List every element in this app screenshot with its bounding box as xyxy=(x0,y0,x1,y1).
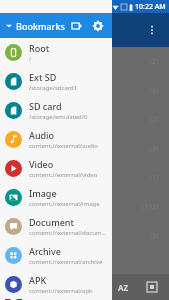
button[interactable]: All Files xyxy=(0,299,112,300)
staticText: content://external/video xyxy=(29,171,98,179)
button[interactable]: Add bookmark xyxy=(69,18,85,34)
staticText: (3) xyxy=(150,144,159,154)
staticText: /storage/emulated/0 xyxy=(29,113,88,121)
button[interactable]: AZ xyxy=(118,282,129,293)
staticText: Ext SD xyxy=(29,71,57,83)
button[interactable]: Audio xyxy=(0,125,112,154)
staticText: (1) xyxy=(150,173,159,183)
button[interactable]: More options xyxy=(141,19,163,41)
staticText: content://external/archive xyxy=(29,258,103,266)
staticText: Archive xyxy=(29,245,61,257)
button[interactable]: Archive xyxy=(0,241,112,270)
staticText: APK xyxy=(29,274,47,286)
staticText: /storage/sdcard1 xyxy=(29,84,78,92)
staticText: content://external/apk xyxy=(29,287,93,295)
button[interactable]: SD card xyxy=(0,96,112,125)
staticText: (2) xyxy=(150,115,159,125)
staticText: content://external/document xyxy=(29,229,108,237)
button[interactable]: APK xyxy=(0,270,112,299)
staticText: (2) xyxy=(150,57,159,67)
staticText: 10:22 AM xyxy=(135,2,166,12)
staticText: (132) xyxy=(142,202,159,212)
button[interactable]: Video xyxy=(0,154,112,183)
staticText: SD card xyxy=(29,100,62,112)
staticText: (8) xyxy=(150,86,159,96)
staticText: Root xyxy=(29,42,50,54)
staticText: (3) xyxy=(150,231,159,241)
staticText: content://external/audio xyxy=(29,142,98,150)
staticText: Image xyxy=(29,187,57,199)
staticText: Video xyxy=(29,158,54,170)
button[interactable]: Root xyxy=(0,38,112,67)
button[interactable]: Settings xyxy=(89,17,107,35)
button[interactable]: Ext SD xyxy=(0,67,112,96)
staticText: content://external/image xyxy=(29,200,100,208)
staticText: / xyxy=(29,55,32,63)
button[interactable]: Bookmarks xyxy=(6,20,65,32)
button[interactable]: Document xyxy=(0,212,112,241)
button[interactable]: View mode xyxy=(145,280,159,294)
staticText: Bookmarks xyxy=(16,20,65,32)
staticText: Audio xyxy=(29,129,55,141)
staticText: Document xyxy=(29,216,74,228)
button[interactable]: Image xyxy=(0,183,112,212)
